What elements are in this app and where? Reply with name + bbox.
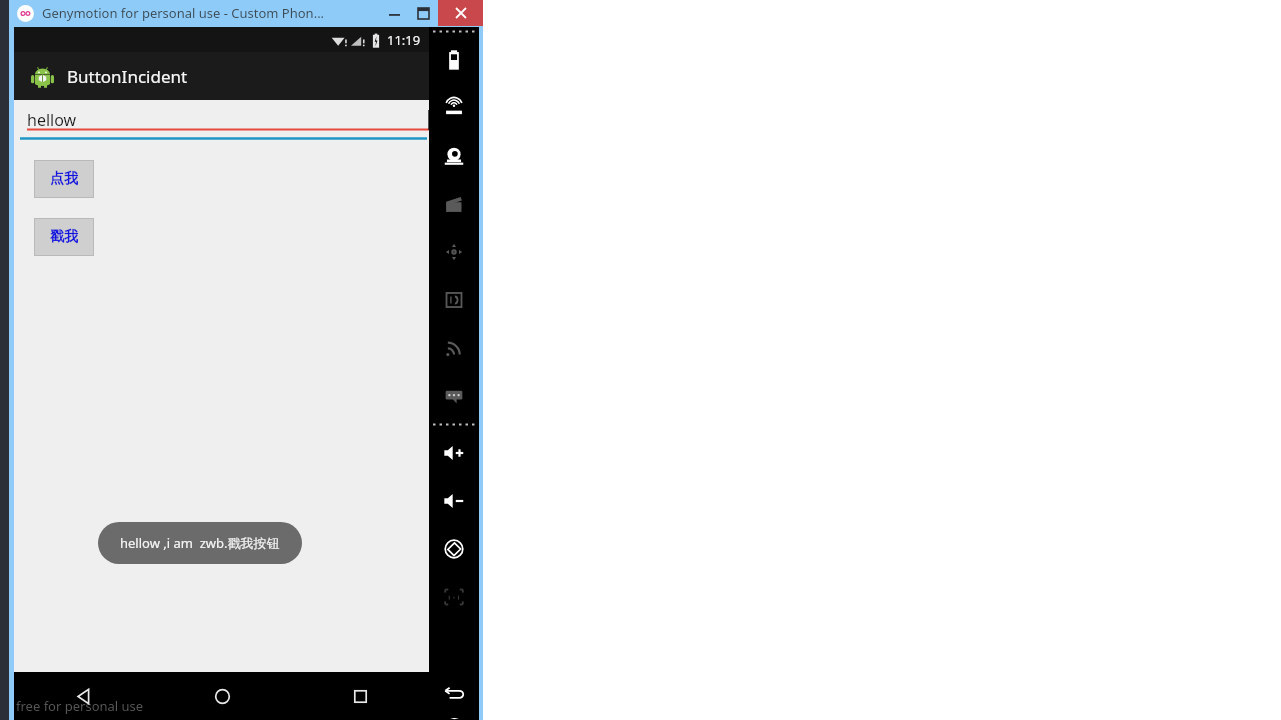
button[interactable]: More xyxy=(429,717,479,720)
staticText: hellow ,i am zwb.戳我按钮 xyxy=(120,534,280,552)
button[interactable]: Device ID xyxy=(429,276,479,324)
button[interactable]: Messages xyxy=(429,372,479,420)
staticText: 戳我 xyxy=(50,228,78,246)
button[interactable]: Recents xyxy=(291,672,429,720)
button[interactable]: Volume up xyxy=(429,429,479,477)
button[interactable]: One to one scale xyxy=(429,573,479,621)
button[interactable]: Battery xyxy=(429,36,479,84)
button[interactable]: Close xyxy=(438,0,483,26)
button[interactable]: 戳我 xyxy=(34,218,94,256)
button[interactable]: Rotate xyxy=(429,525,479,573)
button[interactable]: Video recording xyxy=(429,180,479,228)
staticText: free for personal use xyxy=(16,697,144,715)
button[interactable]: Navigation pad xyxy=(429,228,479,276)
button[interactable]: GPS xyxy=(429,84,479,132)
button[interactable]: Volume down xyxy=(429,477,479,525)
button[interactable]: Network xyxy=(429,324,479,372)
button[interactable]: Back xyxy=(14,672,153,720)
button[interactable]: Home xyxy=(153,672,291,720)
staticText: hellow xyxy=(27,109,77,131)
button[interactable]: Maximize xyxy=(409,0,438,26)
button[interactable]: Camera xyxy=(429,132,479,180)
staticText: ButtonIncident xyxy=(67,65,188,88)
button[interactable]: 点我 xyxy=(34,160,94,198)
staticText: 11:19 xyxy=(387,31,421,49)
staticText: 点我 xyxy=(50,170,78,188)
button[interactable]: Minimize xyxy=(380,0,409,26)
button[interactable]: Back xyxy=(429,669,479,717)
staticText: Genymotion for personal use - Custom Pho… xyxy=(42,4,325,22)
